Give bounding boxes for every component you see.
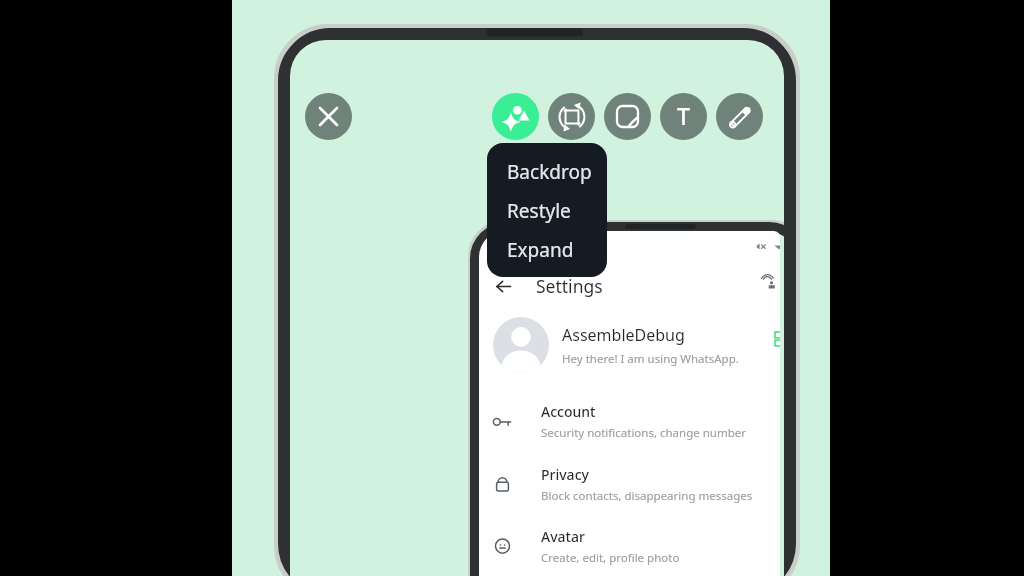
button[interactable]: Add text	[660, 93, 707, 140]
staticText: Settings	[536, 274, 603, 298]
staticText: Restyle	[507, 198, 571, 224]
staticText: Privacy	[541, 465, 589, 484]
staticText: Account	[541, 402, 596, 421]
button[interactable]: Back	[490, 273, 516, 299]
button[interactable]: Privacy	[484, 455, 780, 513]
button[interactable]: Close editor	[305, 93, 352, 140]
button[interactable]: Account	[484, 392, 780, 450]
button[interactable]: Add sticker	[604, 93, 651, 140]
staticText: T	[677, 100, 690, 131]
staticText: Create, edit, profile photo	[541, 550, 680, 566]
button[interactable]: Expand	[487, 230, 607, 269]
button[interactable]: Crop and rotate	[548, 93, 595, 140]
button[interactable]: Backdrop	[487, 152, 607, 191]
staticText: Hey there! I am using WhatsApp.	[562, 351, 739, 367]
staticText: Avatar	[541, 527, 585, 546]
button[interactable]: Avatar	[484, 517, 780, 575]
button[interactable]: AI tools	[492, 93, 539, 140]
staticText: AssembleDebug	[562, 324, 685, 346]
button[interactable]: Draw	[716, 93, 763, 140]
staticText: Backdrop	[507, 159, 592, 185]
button[interactable]: AssembleDebug	[493, 317, 773, 373]
button[interactable]: Restyle	[487, 191, 607, 230]
staticText: Block contacts, disappearing messages	[541, 488, 753, 504]
button[interactable]: Linked devices	[757, 270, 780, 294]
staticText: Security notifications, change number	[541, 425, 746, 441]
staticText: Expand	[507, 237, 574, 263]
